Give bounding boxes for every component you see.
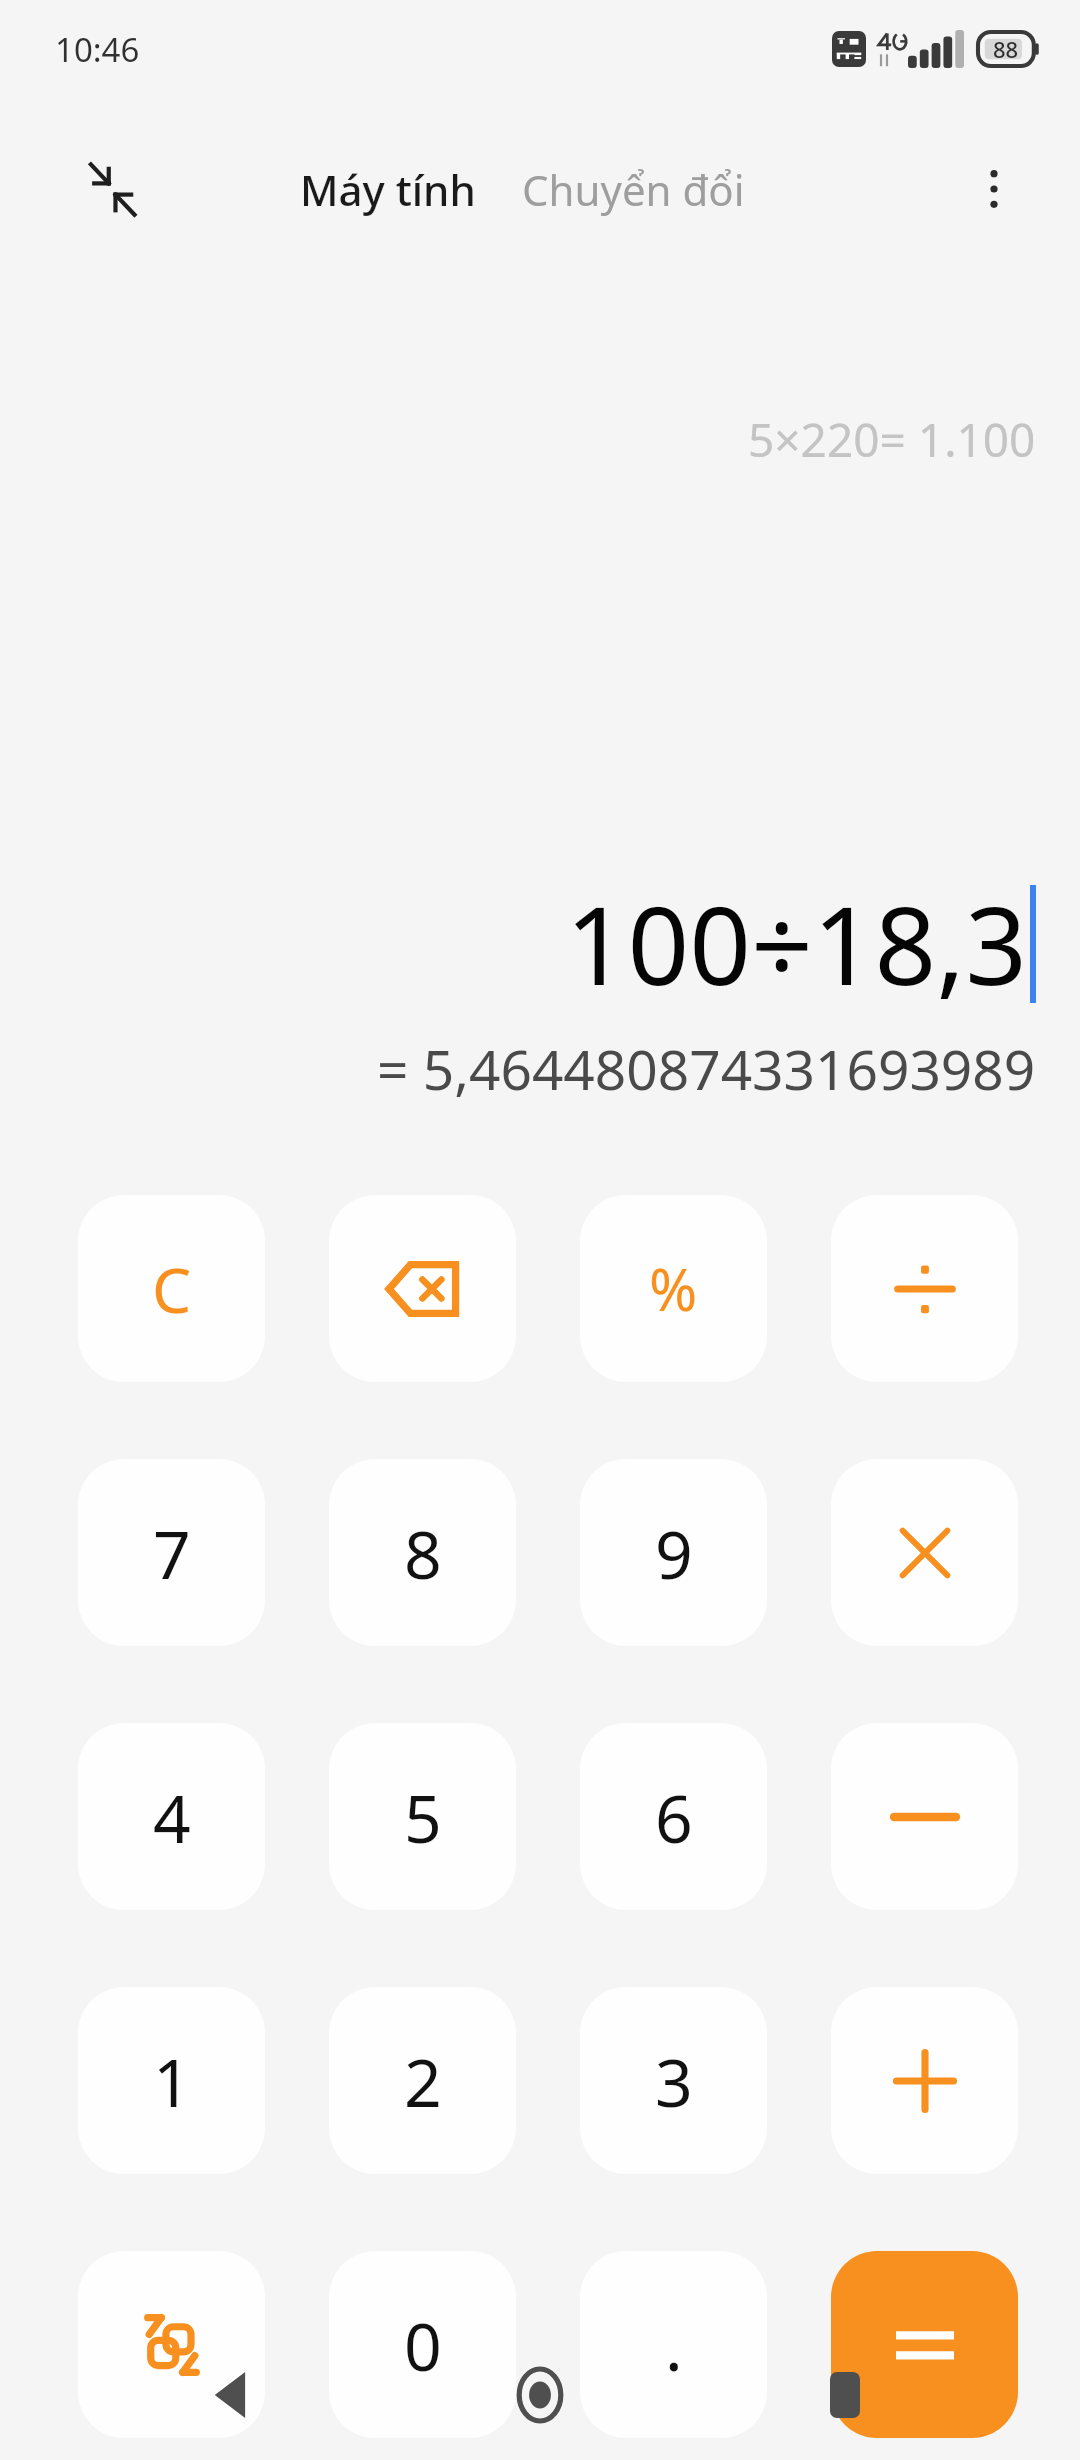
staticText: C — [152, 1247, 192, 1331]
button[interactable]: Máy tính — [290, 153, 486, 226]
button[interactable]: Xóa lùi — [329, 1195, 516, 1382]
staticText: 9 — [655, 1508, 693, 1598]
staticText: 5×220= 1.100 — [748, 408, 1036, 471]
staticText: 4 — [153, 1772, 191, 1862]
button[interactable]: Trừ — [831, 1723, 1018, 1910]
button[interactable]: 3 — [580, 1987, 767, 2174]
button[interactable]: C — [78, 1195, 265, 1382]
staticText: 0 — [404, 2300, 442, 2390]
button[interactable]: Quay lại — [165, 2330, 305, 2460]
button[interactable]: 1 — [78, 1987, 265, 2174]
button[interactable]: Tùy chọn khác — [954, 149, 1034, 229]
staticText: 6 — [655, 1772, 693, 1862]
button[interactable]: 7 — [78, 1459, 265, 1646]
button[interactable]: Bằng — [831, 2251, 1018, 2438]
staticText: 5 — [404, 1772, 442, 1862]
staticText: Máy tính — [300, 161, 476, 218]
staticText: 100÷18,3 — [565, 870, 1027, 1017]
staticText: 7 — [153, 1508, 191, 1598]
button[interactable]: Cộng — [831, 1987, 1018, 2174]
staticText: 3 — [655, 2036, 693, 2126]
button[interactable]: Phần trăm — [580, 1195, 767, 1382]
button[interactable]: 5 — [329, 1723, 516, 1910]
staticText: 88 — [993, 34, 1019, 64]
button[interactable]: 4 — [78, 1723, 265, 1910]
button[interactable]: Thu nhỏ — [68, 146, 154, 232]
button[interactable]: Chuyển đổi — [512, 153, 755, 226]
button[interactable]: 2 — [329, 1987, 516, 2174]
staticText: 1 — [153, 2036, 191, 2126]
button[interactable]: Nhân — [831, 1459, 1018, 1646]
button[interactable]: Màn hình chính — [470, 2330, 610, 2460]
staticText: 2 — [404, 2036, 442, 2126]
staticText: . — [665, 2300, 683, 2390]
staticText: 10:46 — [55, 27, 140, 72]
button[interactable]: 9 — [580, 1459, 767, 1646]
button[interactable]: . — [580, 2251, 767, 2438]
staticText: 8 — [404, 1508, 442, 1598]
button[interactable]: 6 — [580, 1723, 767, 1910]
staticText: % — [649, 1249, 698, 1328]
button[interactable]: 0 — [329, 2251, 516, 2438]
button[interactable]: Ứng dụng gần đây — [775, 2330, 915, 2460]
button[interactable]: 8 — [329, 1459, 516, 1646]
button[interactable]: Chia — [831, 1195, 1018, 1382]
button[interactable]: Khoa học — [78, 2251, 265, 2438]
staticText: = 5,464480874331693989 — [377, 1031, 1036, 1106]
staticText: Chuyển đổi — [522, 161, 745, 218]
